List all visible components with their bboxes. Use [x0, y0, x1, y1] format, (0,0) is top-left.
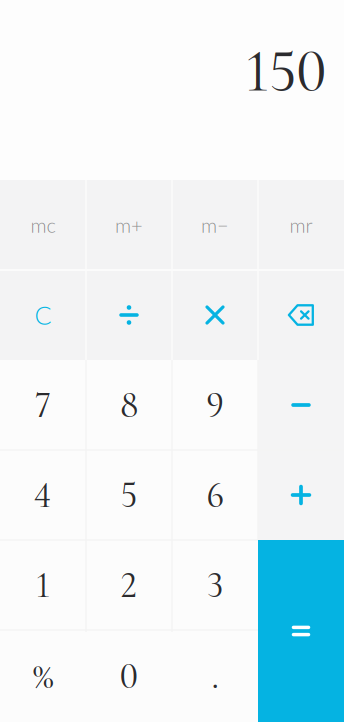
- button[interactable]: m+: [86, 180, 172, 270]
- button[interactable]: Multiply: [172, 270, 258, 360]
- staticText: 3: [207, 562, 223, 608]
- button[interactable]: Divide: [86, 270, 172, 360]
- staticText: 5: [120, 472, 137, 518]
- staticText: 7: [35, 382, 51, 428]
- staticText: 150: [245, 34, 327, 108]
- staticText: 4: [34, 472, 52, 518]
- button[interactable]: C: [0, 270, 86, 360]
- button[interactable]: 7: [0, 360, 86, 450]
- staticText: 1: [35, 562, 50, 608]
- button[interactable]: Equals: [258, 540, 344, 722]
- staticText: 8: [120, 382, 138, 428]
- staticText: 6: [206, 472, 224, 518]
- button[interactable]: mc: [0, 180, 86, 270]
- staticText: %: [32, 653, 53, 699]
- staticText: 0: [119, 653, 138, 699]
- staticText: 9: [206, 382, 224, 428]
- button[interactable]: 0: [86, 630, 172, 722]
- button[interactable]: Plus: [258, 450, 344, 540]
- button[interactable]: 9: [172, 360, 258, 450]
- button[interactable]: %: [0, 630, 86, 722]
- button[interactable]: 5: [86, 450, 172, 540]
- button[interactable]: 6: [172, 450, 258, 540]
- button[interactable]: 1: [0, 540, 86, 630]
- button[interactable]: .: [172, 630, 258, 722]
- button[interactable]: 4: [0, 450, 86, 540]
- button[interactable]: 3: [172, 540, 258, 630]
- staticText: m−: [201, 213, 229, 237]
- button[interactable]: 8: [86, 360, 172, 450]
- staticText: 2: [120, 562, 137, 608]
- button[interactable]: 2: [86, 540, 172, 630]
- staticText: mc: [30, 213, 55, 237]
- button[interactable]: Delete: [258, 270, 344, 360]
- button[interactable]: mr: [258, 180, 344, 270]
- staticText: .: [211, 653, 218, 699]
- staticText: mr: [289, 213, 312, 237]
- staticText: m+: [115, 213, 143, 237]
- button[interactable]: m−: [172, 180, 258, 270]
- staticText: C: [34, 300, 51, 330]
- button[interactable]: Minus: [258, 360, 344, 450]
